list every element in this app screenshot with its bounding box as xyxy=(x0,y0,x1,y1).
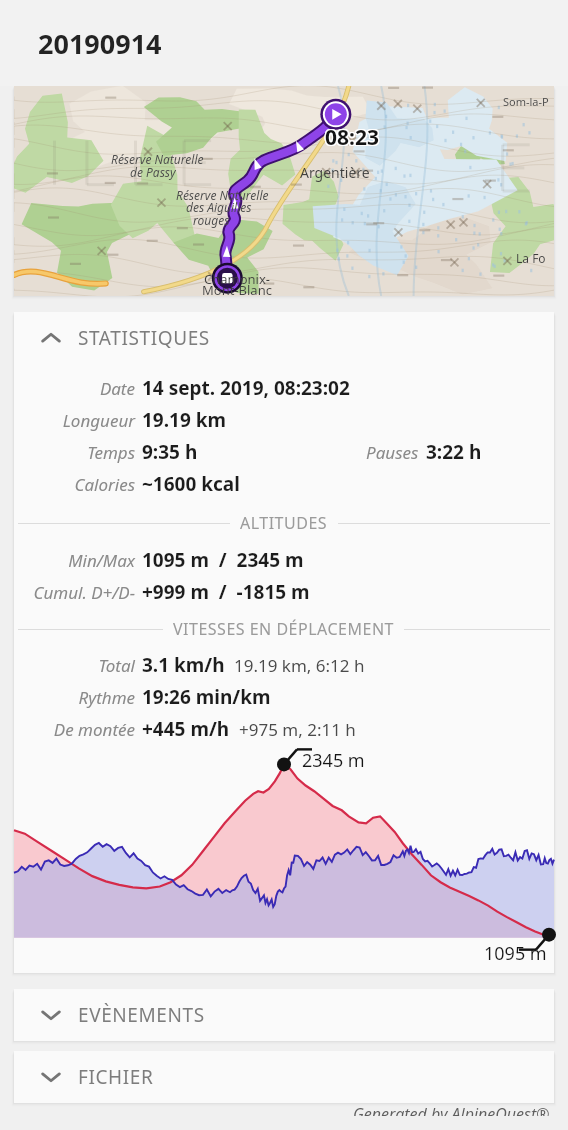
staticText: 08:23 xyxy=(325,124,379,153)
staticText: Pauses xyxy=(366,441,419,464)
button[interactable]: FICHIER xyxy=(14,1051,554,1103)
staticText: rouges xyxy=(193,212,230,228)
staticText: 19.19 km xyxy=(142,407,227,433)
staticText: 08:23 xyxy=(325,123,379,152)
staticText: 3:22 h xyxy=(426,439,482,465)
staticText: Date xyxy=(99,377,135,400)
button[interactable]: EVÈNEMENTS xyxy=(14,989,554,1041)
staticText: 1095 m / 2345 m xyxy=(142,547,304,573)
staticText: +975 m, 2:11 h xyxy=(239,718,356,741)
staticText: Total xyxy=(98,654,135,677)
staticText: 08:23 xyxy=(325,122,379,151)
staticText: 08:23 xyxy=(326,123,380,152)
staticText: Calories xyxy=(74,473,135,496)
staticText: +445 m/h xyxy=(142,716,230,742)
staticText: Mont-Blanc xyxy=(202,281,272,299)
staticText: VITESSES EN DÉPLACEMENT xyxy=(173,618,394,640)
staticText: +999 m / -1815 m xyxy=(142,579,310,605)
staticText: Min/Max xyxy=(68,549,135,572)
staticText: Longueur xyxy=(62,409,135,432)
staticText: Chamonix- xyxy=(204,270,271,288)
staticText: Temps xyxy=(87,441,135,464)
staticText: ~1600 kcal xyxy=(142,471,240,497)
staticText: Cumul. D+/D- xyxy=(33,581,135,604)
staticText: 08:23 xyxy=(324,123,378,152)
staticText: De montée xyxy=(53,718,135,741)
staticText: 9:35 h xyxy=(142,439,198,465)
staticText: 20190914 xyxy=(38,25,162,62)
staticText: 08:23 xyxy=(326,122,380,151)
staticText: ALTITUDES xyxy=(240,512,328,534)
staticText: 2345 m xyxy=(302,748,365,773)
staticText: 19.19 km, 6:12 h xyxy=(234,654,365,677)
staticText: Argentière xyxy=(300,163,370,182)
staticText: Generated by AlpineQuest® xyxy=(353,1103,550,1116)
button[interactable]: Track map xyxy=(14,86,554,296)
staticText: 19:26 min/km xyxy=(142,684,271,710)
staticText: 3.1 km/h xyxy=(142,652,225,678)
staticText: Som-la-P xyxy=(503,94,549,109)
staticText: Réserve Naturelle xyxy=(111,151,204,167)
staticText: La Fo xyxy=(516,250,546,266)
staticText: 14 sept. 2019, 08:23:02 xyxy=(142,375,350,401)
staticText: EVÈNEMENTS xyxy=(78,1002,205,1028)
staticText: des Aiguilles xyxy=(186,199,252,215)
staticText: STATISTIQUES xyxy=(78,325,210,351)
staticText: FICHIER xyxy=(78,1064,154,1090)
staticText: 08:23 xyxy=(324,122,378,151)
staticText: de Passy xyxy=(130,164,176,180)
staticText: 08:23 xyxy=(326,124,380,153)
staticText: 08:23 xyxy=(324,124,378,153)
staticText: 1095 m xyxy=(484,941,547,966)
staticText: Réserve Naturelle xyxy=(176,187,269,203)
button[interactable]: STATISTIQUES xyxy=(14,312,554,364)
staticText: Rythme xyxy=(78,686,135,709)
